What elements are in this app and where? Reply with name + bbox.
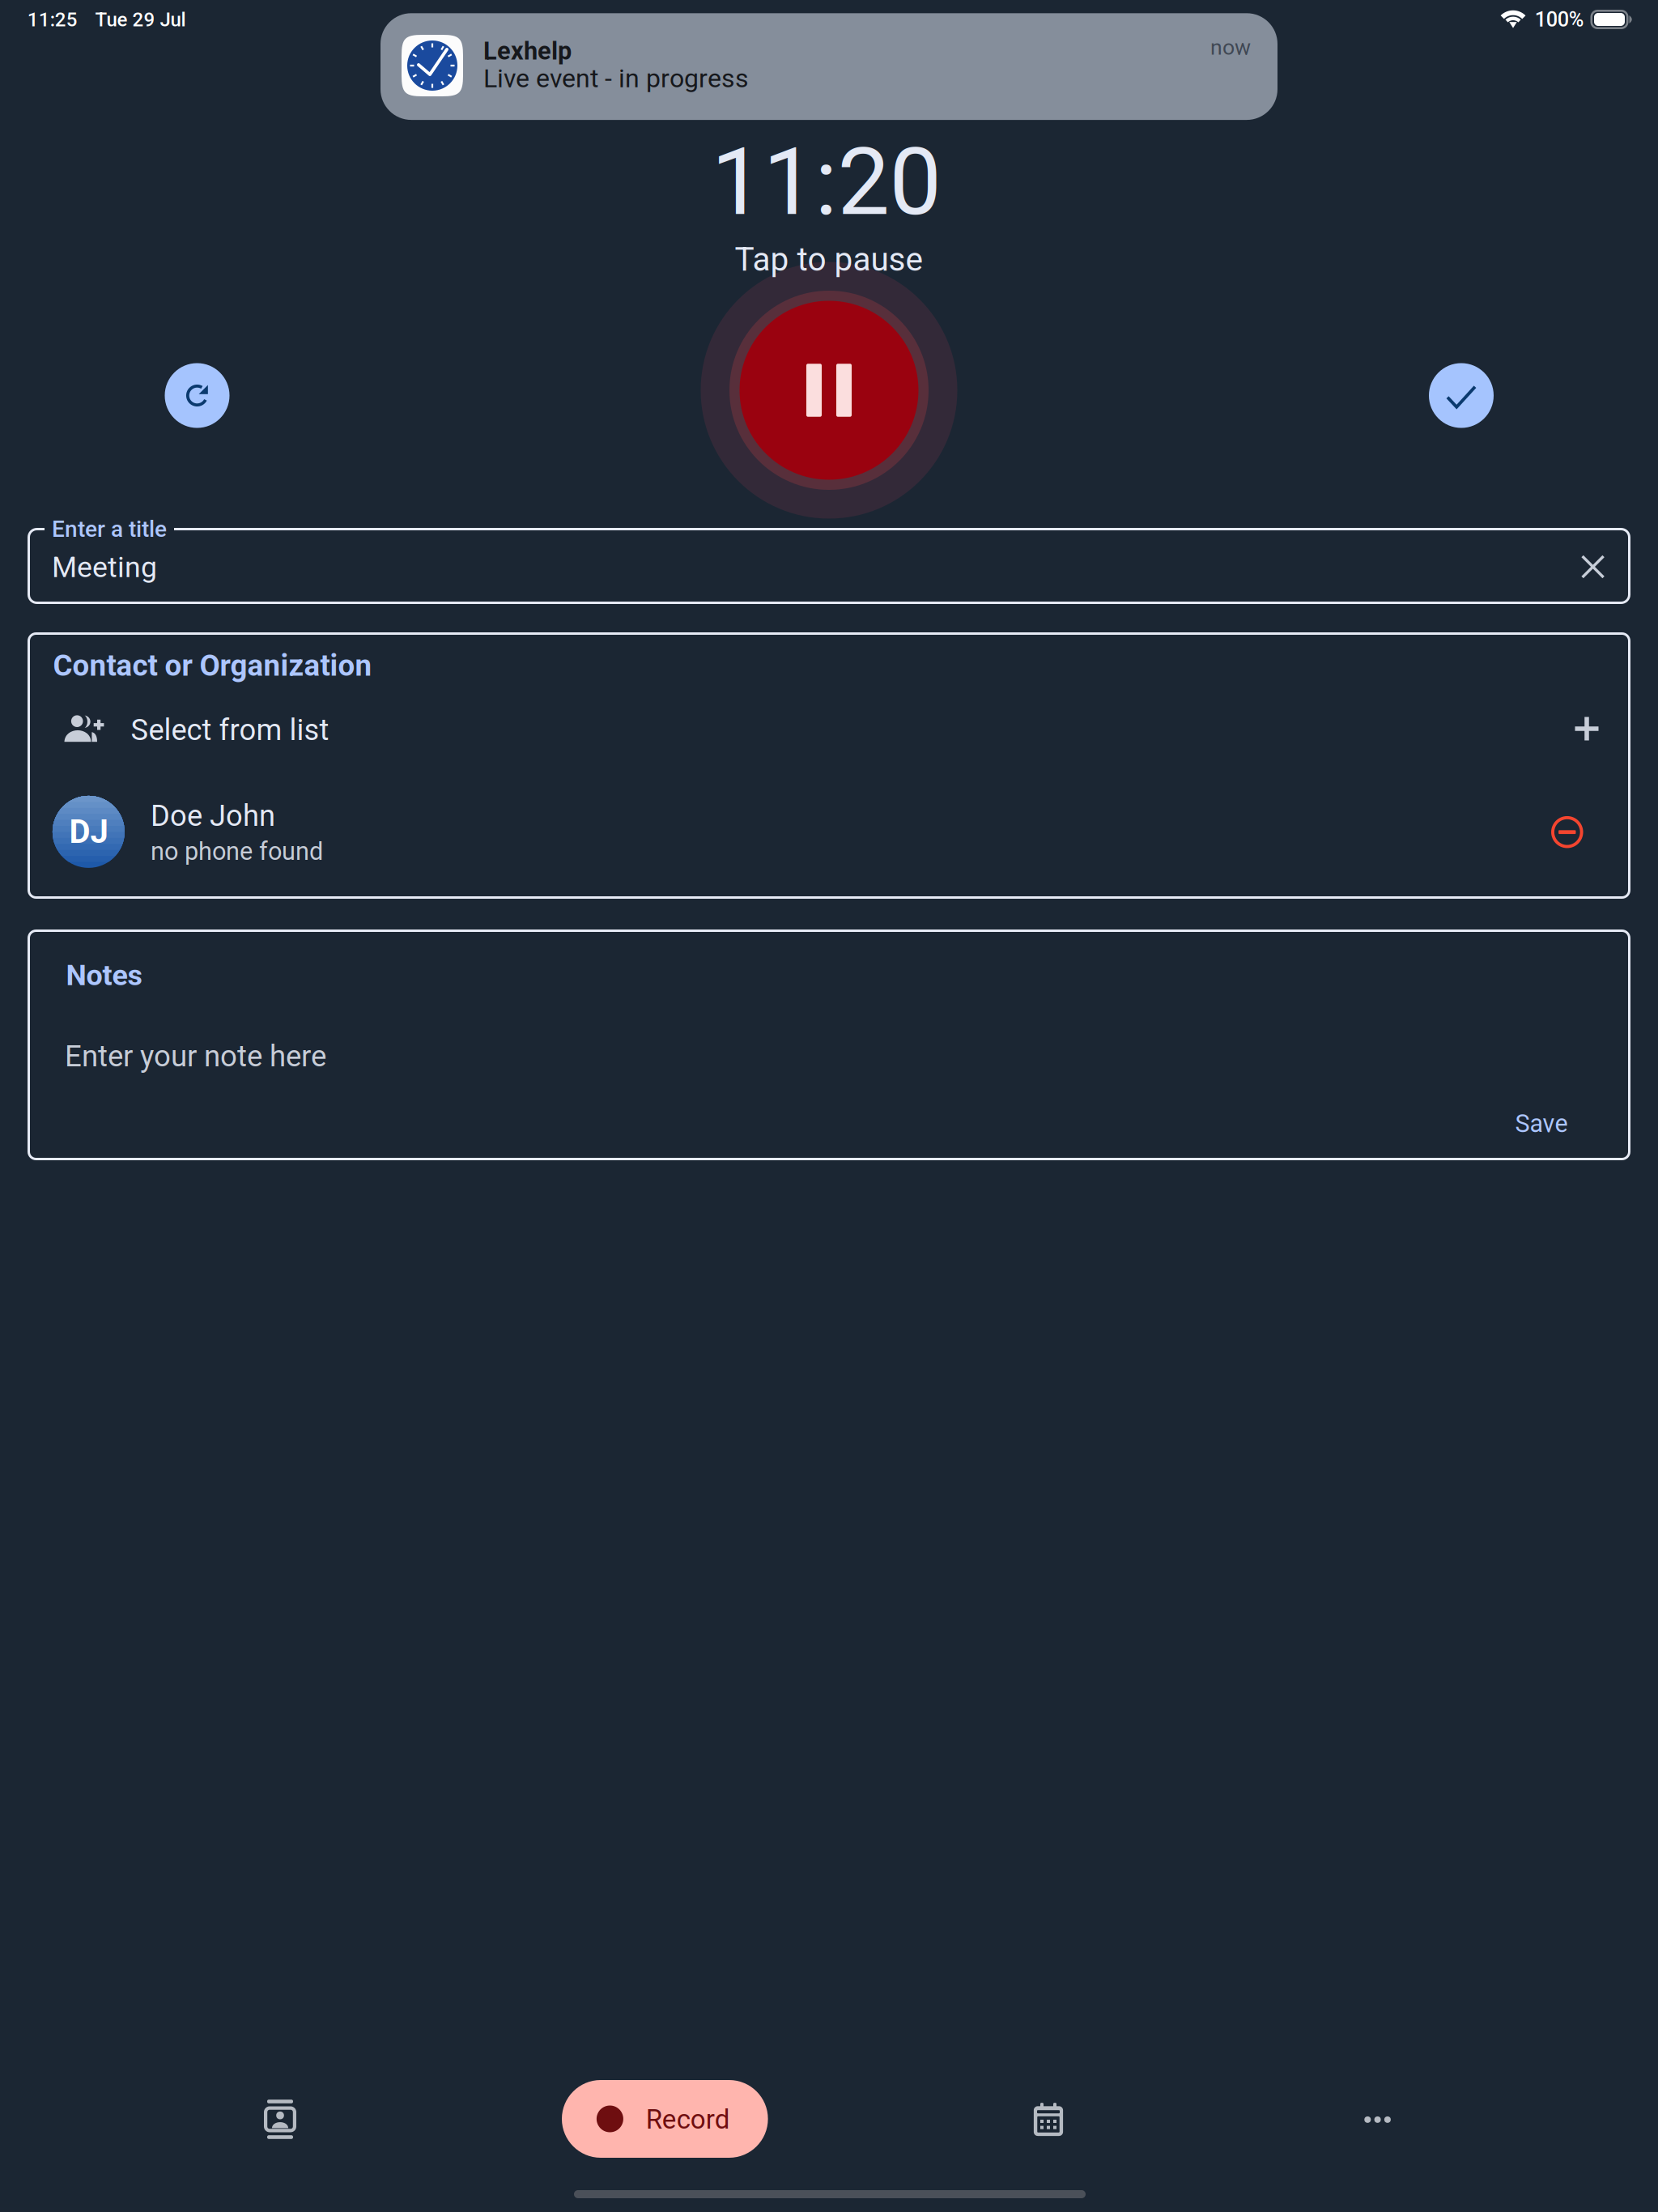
button[interactable]: Restart recording [165,363,230,428]
button[interactable]: More options [1321,2071,1434,2168]
staticText: no phone found [151,837,323,866]
staticText: now [1210,35,1251,60]
staticText: Doe John [151,799,275,833]
button[interactable]: Record [562,2080,768,2158]
staticText: Contact or Organization [53,648,372,683]
button[interactable]: Pause recording [701,262,957,519]
staticText: Select from list [131,713,329,747]
staticText: Tue 29 Jul [95,8,186,31]
button[interactable]: Clear title [1561,534,1625,599]
button[interactable]: Calendar [992,2071,1105,2168]
staticText: 11:25 [27,8,78,31]
button[interactable]: Save [1494,1098,1589,1149]
staticText: Enter your note here [65,1039,326,1074]
staticText: 11:20 [711,128,941,237]
staticText: Save [1515,1109,1568,1138]
staticText: 100% [1535,8,1584,32]
staticText: Enter a title [52,516,167,542]
button[interactable]: Select from list [64,700,1489,757]
button[interactable]: Finish recording [1429,363,1494,428]
staticText: Notes [66,958,142,992]
button[interactable]: Remove contact [1532,797,1602,867]
staticText: Live event - in progress [483,63,749,94]
staticText: Tap to pause [735,240,923,279]
staticText: Record [646,2104,730,2135]
staticText: Lexhelp [483,36,572,65]
staticText: Meeting [52,550,157,584]
staticText: DJ [69,813,108,851]
button[interactable]: Add contact [1552,694,1622,764]
button[interactable]: Contacts [223,2071,337,2168]
